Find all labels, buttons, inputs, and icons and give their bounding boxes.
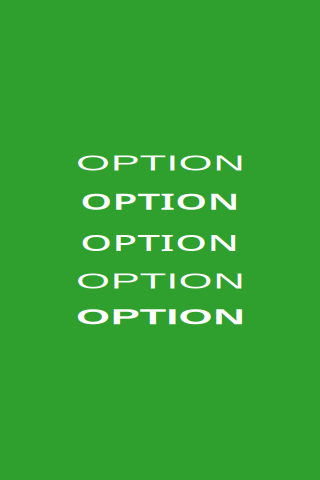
staticText: OPTION	[119, 305, 201, 329]
staticText: OPTION	[118, 187, 202, 216]
staticText: OPTION	[119, 269, 201, 293]
staticText: OPTION	[119, 151, 201, 175]
staticText: OPTION	[118, 228, 202, 257]
